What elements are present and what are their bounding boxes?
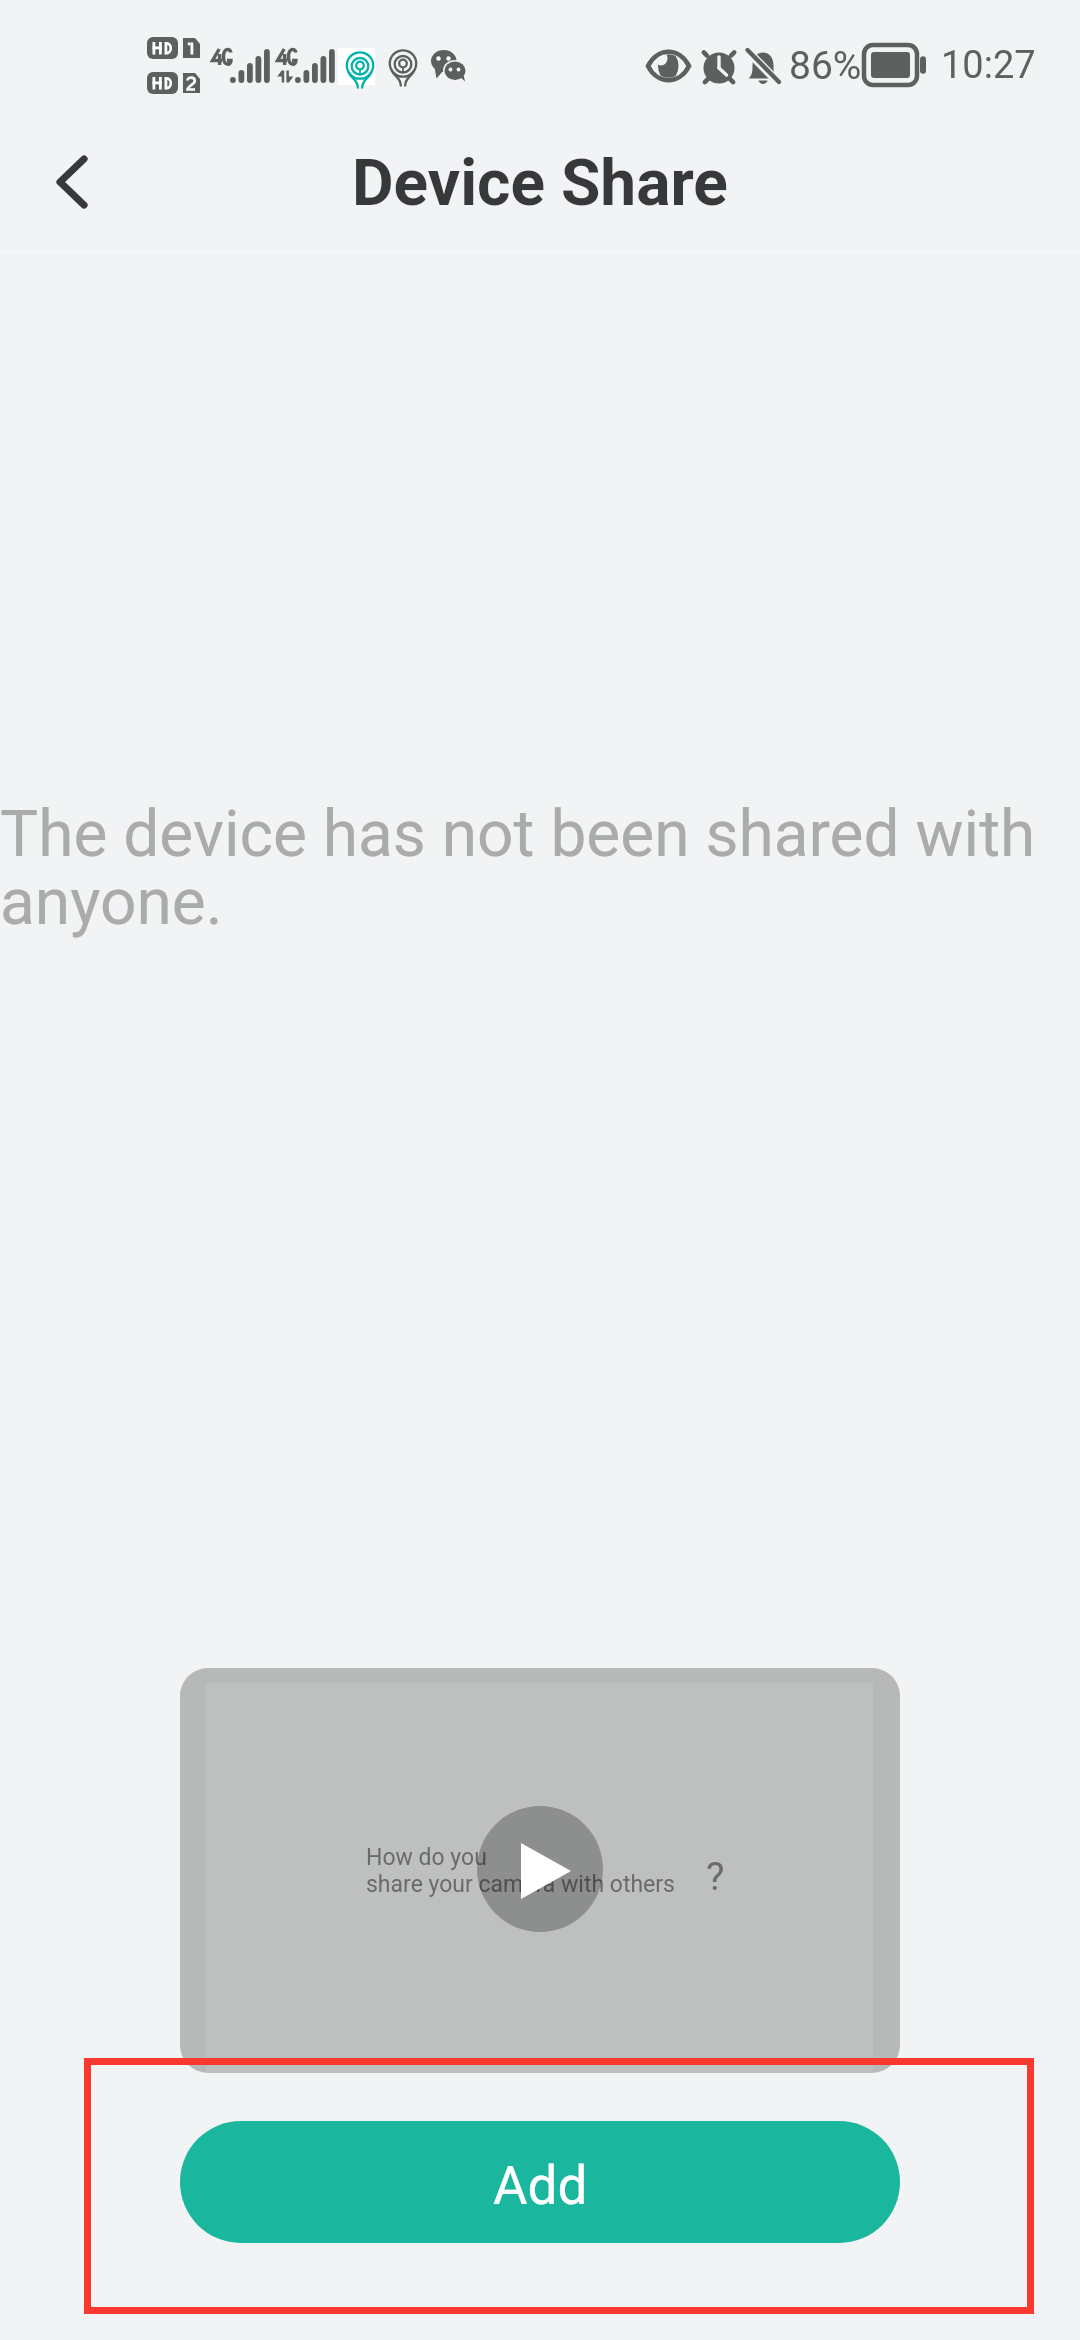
staticText: Add [493, 2155, 588, 2217]
staticText: 86% [789, 43, 862, 89]
staticText: share your camera with others [366, 1871, 675, 1898]
staticText: How do you [366, 1844, 487, 1871]
button[interactable]: Play video [477, 1806, 603, 1932]
button[interactable]: How do you [180, 1668, 900, 2073]
staticText: 10:27 [941, 43, 1036, 88]
staticText: anyone. [0, 865, 223, 940]
staticText: ? [706, 1854, 725, 1900]
button[interactable]: Add [180, 2121, 900, 2243]
staticText: Device Share [352, 146, 728, 221]
button[interactable]: Back [30, 147, 114, 231]
staticText: The device has not been shared with [0, 797, 1036, 872]
